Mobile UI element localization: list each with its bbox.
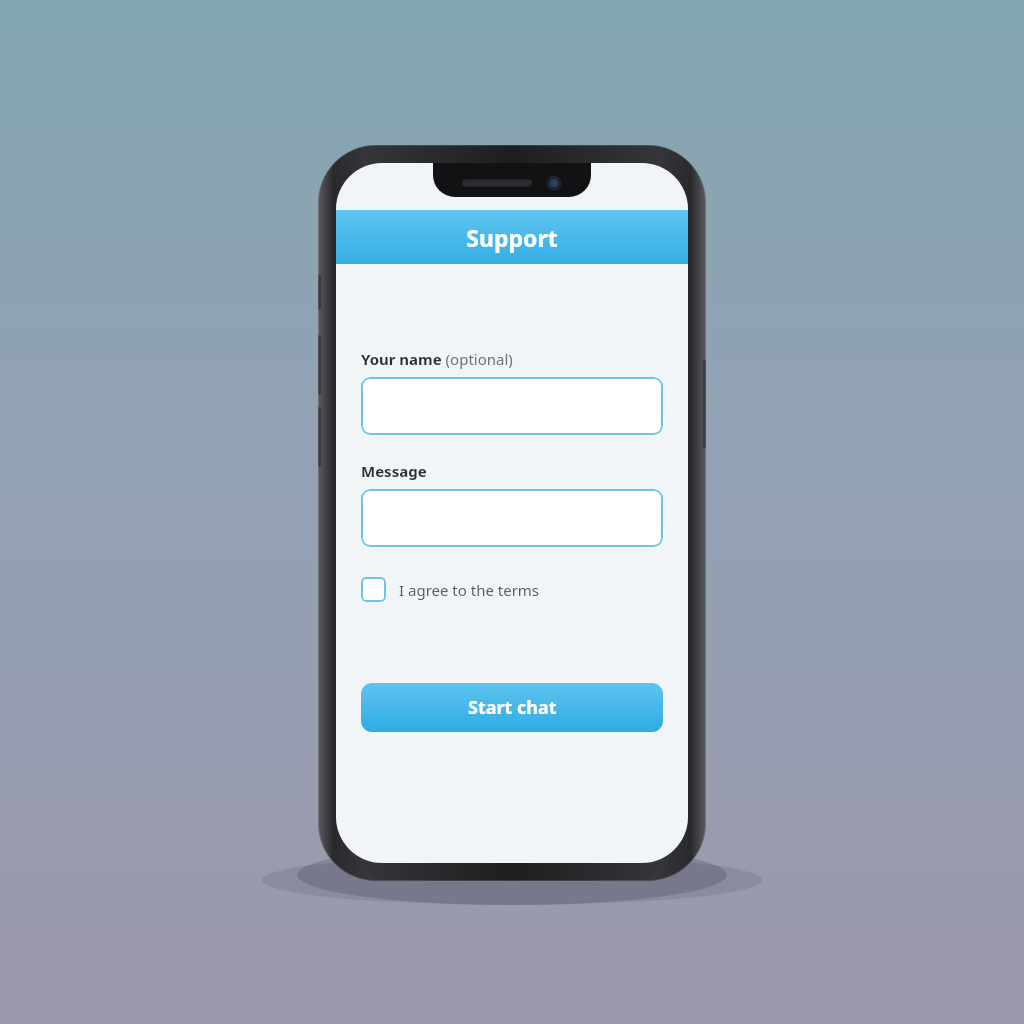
button[interactable]: Your name input field: [361, 377, 663, 435]
staticText: I agree to the terms: [399, 580, 540, 600]
button[interactable]: Message input field: [361, 489, 663, 547]
staticText: Your name (optional): [361, 349, 513, 369]
staticText: Start chat: [468, 695, 557, 720]
staticText: Support: [466, 222, 558, 253]
button[interactable]: Start chat: [361, 683, 663, 732]
button[interactable]: I agree to the terms: [361, 573, 540, 606]
staticText: Message: [361, 461, 427, 481]
